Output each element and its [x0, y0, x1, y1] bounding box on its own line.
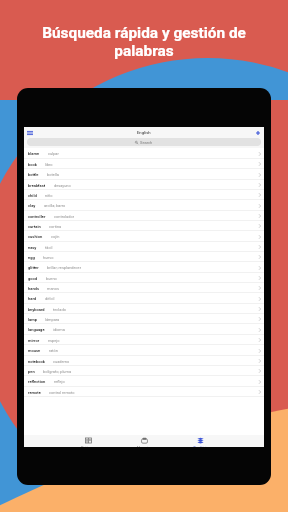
button[interactable]: Add word	[253, 128, 262, 137]
staticText: mirror	[28, 338, 40, 343]
button[interactable]: pen	[24, 366, 264, 376]
staticText: child	[28, 193, 37, 198]
staticText: niño	[45, 193, 53, 198]
staticText: control remoto	[49, 390, 75, 395]
button[interactable]: reflection	[24, 376, 264, 387]
staticText: Búsqueda rápida y gestión de palabras	[24, 24, 264, 60]
staticText: Word List	[193, 446, 207, 447]
staticText: cojín	[51, 234, 60, 239]
staticText: reflection	[28, 379, 46, 384]
button[interactable]: clay	[24, 200, 264, 211]
staticText: Memorize	[137, 446, 152, 447]
staticText: keyboard	[28, 307, 45, 312]
button[interactable]: mirror	[24, 335, 264, 345]
staticText: brillar; resplandecer	[47, 265, 81, 270]
button[interactable]: mouse	[24, 345, 264, 356]
staticText: lamp	[28, 317, 37, 322]
staticText: ratón	[49, 348, 58, 353]
staticText: clay	[28, 203, 36, 208]
staticText: manos	[47, 286, 59, 291]
staticText: Dictionary	[81, 446, 96, 447]
staticText: language	[28, 327, 45, 332]
staticText: cuaderno	[53, 359, 70, 364]
button[interactable]: glitter	[24, 262, 264, 273]
staticText: notebook	[28, 359, 45, 364]
staticText: curtain	[28, 224, 41, 229]
staticText: book	[28, 162, 37, 167]
button[interactable]: remote	[24, 387, 264, 397]
staticText: huevo	[43, 255, 54, 260]
button[interactable]: Menu	[25, 128, 34, 137]
staticText: fácil	[45, 245, 53, 250]
staticText: controlador	[54, 214, 74, 219]
staticText: teclado	[53, 307, 66, 312]
staticText: botella	[47, 172, 59, 177]
button[interactable]: child	[24, 190, 264, 200]
staticText: libro	[45, 162, 53, 167]
button[interactable]: hands	[24, 283, 264, 293]
button[interactable]: Search	[27, 138, 261, 146]
button[interactable]: hard	[24, 293, 264, 304]
staticText: glitter	[28, 265, 39, 270]
staticText: pen	[28, 369, 35, 374]
staticText: difícil	[45, 296, 55, 301]
button[interactable]: language	[24, 324, 264, 335]
staticText: arcilla; barro	[44, 203, 66, 208]
staticText: controller	[28, 214, 46, 219]
staticText: desayuno	[54, 183, 71, 188]
staticText: good	[28, 276, 38, 281]
button[interactable]: Memorize	[124, 435, 164, 447]
staticText: bolígrafo; pluma	[43, 369, 72, 374]
button[interactable]: bottle	[24, 169, 264, 180]
staticText: reflejo	[54, 379, 65, 384]
staticText: hands	[28, 286, 39, 291]
staticText: bueno	[46, 276, 57, 281]
button[interactable]: breakfast	[24, 180, 264, 190]
staticText: idioma	[53, 327, 65, 332]
button[interactable]: controller	[24, 211, 264, 221]
staticText: culpar	[48, 151, 59, 156]
staticText: breakfast	[28, 183, 46, 188]
button[interactable]: blame	[24, 148, 264, 159]
staticText: hard	[28, 296, 37, 301]
staticText: espejo	[48, 338, 60, 343]
button[interactable]: Word List	[180, 435, 220, 447]
staticText: English	[137, 130, 151, 135]
staticText: blame	[28, 151, 40, 156]
staticText: cushion	[28, 234, 43, 239]
button[interactable]: book	[24, 159, 264, 169]
button[interactable]: easy	[24, 242, 264, 252]
staticText: remote	[28, 390, 41, 395]
staticText: Search	[140, 140, 153, 145]
button[interactable]: notebook	[24, 356, 264, 366]
staticText: cortina	[49, 224, 62, 229]
button[interactable]: Dictionary	[68, 435, 108, 447]
staticText: bottle	[28, 172, 39, 177]
button[interactable]: curtain	[24, 221, 264, 231]
button[interactable]: egg	[24, 252, 264, 262]
button[interactable]: lamp	[24, 314, 264, 324]
staticText: easy	[28, 245, 37, 250]
button[interactable]: cushion	[24, 231, 264, 242]
staticText: egg	[28, 255, 35, 260]
button[interactable]: good	[24, 273, 264, 283]
staticText: lámpara	[45, 317, 60, 322]
button[interactable]: keyboard	[24, 304, 264, 314]
staticText: mouse	[28, 348, 41, 353]
